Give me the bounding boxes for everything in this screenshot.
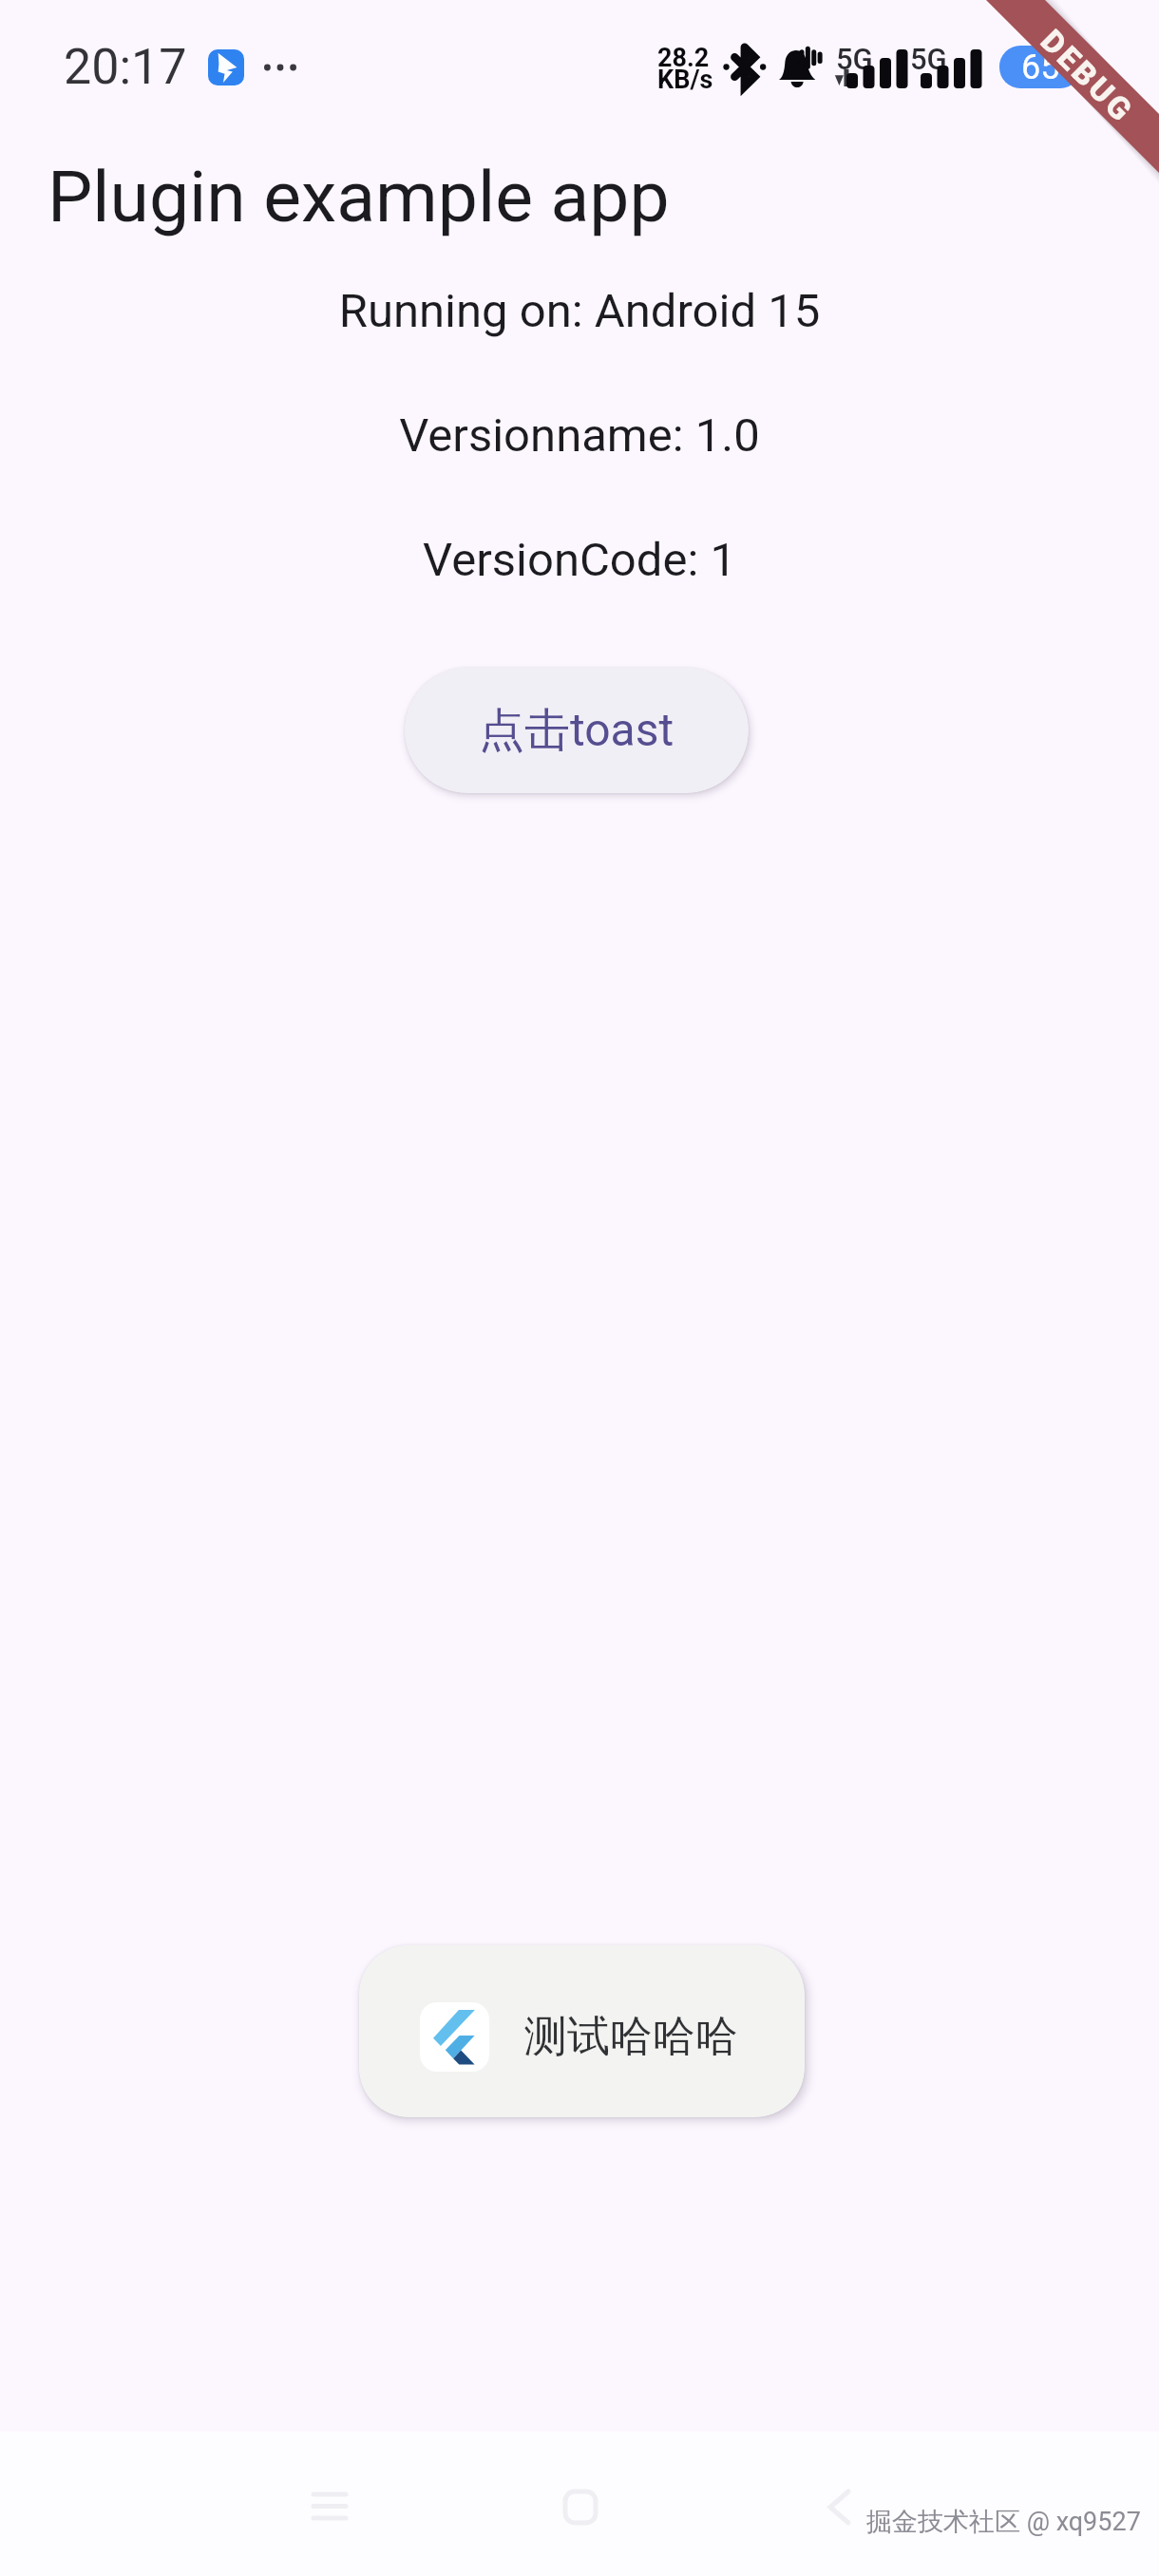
staticText: KB/s: [657, 65, 713, 95]
staticText: 掘金技术社区 @ xq9527: [866, 2506, 1141, 2538]
staticText: 点击toast: [479, 702, 674, 759]
staticText: 5G: [836, 42, 873, 76]
button[interactable]: Back: [739, 2439, 916, 2568]
button[interactable]: 点击toast: [405, 668, 749, 793]
staticText: Plugin example app: [47, 155, 670, 238]
staticText: Running on: Android 15: [0, 284, 1159, 338]
staticText: Versionname: 1.0: [0, 408, 1159, 463]
staticText: DEBUG: [1033, 22, 1141, 130]
staticText: 65: [1021, 47, 1060, 87]
staticText: 28.2: [657, 43, 710, 73]
staticText: VersionCode: 1: [0, 533, 1159, 587]
staticText: 20:17: [64, 38, 187, 96]
staticText: 测试哈哈哈: [524, 2010, 738, 2064]
staticText: 5G: [910, 42, 947, 76]
